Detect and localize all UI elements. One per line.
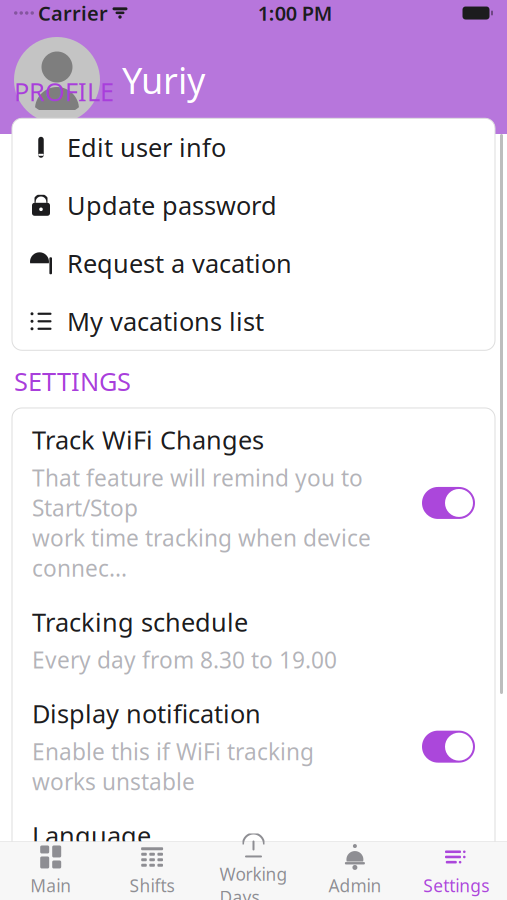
button[interactable]: Language: [12, 808, 495, 863]
staticText: Language: [32, 819, 151, 852]
staticText: SETTINGS: [14, 364, 131, 398]
staticText: 1:00 PM: [258, 0, 333, 26]
button[interactable]: Track WiFi Changes: [12, 412, 495, 594]
staticText: PROFILE: [14, 75, 114, 108]
button[interactable]: Tracking schedule: [12, 594, 495, 686]
staticText: Tracking schedule: [32, 605, 248, 639]
staticText: Request a vacation: [67, 246, 292, 280]
staticText: Shifts: [130, 874, 175, 897]
button[interactable]: Shifts: [101, 842, 203, 900]
button[interactable]: Admin: [304, 842, 406, 900]
staticText: Settings: [423, 874, 489, 897]
staticText: My vacations list: [67, 304, 264, 338]
staticText: Display notification: [32, 697, 261, 730]
button[interactable]: Working Days: [203, 842, 304, 900]
staticText: DANGER ZONE: [14, 881, 189, 900]
staticText: Every day from 8.30 to 19.00: [32, 645, 337, 675]
button[interactable]: Edit user info: [12, 118, 495, 176]
staticText: Enable this if WiFi tracking works unsta…: [32, 736, 314, 797]
button[interactable]: Main: [0, 842, 101, 900]
button[interactable]: Settings: [406, 842, 507, 900]
button[interactable]: Request a vacation: [12, 234, 495, 292]
staticText: Track WiFi Changes: [32, 423, 264, 456]
staticText: Working Days: [219, 862, 287, 900]
staticText: Edit user info: [67, 130, 226, 164]
button[interactable]: Update password: [12, 176, 495, 234]
staticText: Yuriy: [122, 56, 205, 104]
staticText: Update password: [67, 188, 277, 222]
staticText: Carrier: [38, 0, 108, 26]
button[interactable]: My vacations list: [12, 292, 495, 350]
staticText: Admin: [328, 874, 381, 897]
button[interactable]: Display notification: [12, 686, 495, 807]
staticText: Main: [30, 874, 71, 897]
staticText: That feature will remind you to Start/St…: [32, 463, 371, 583]
